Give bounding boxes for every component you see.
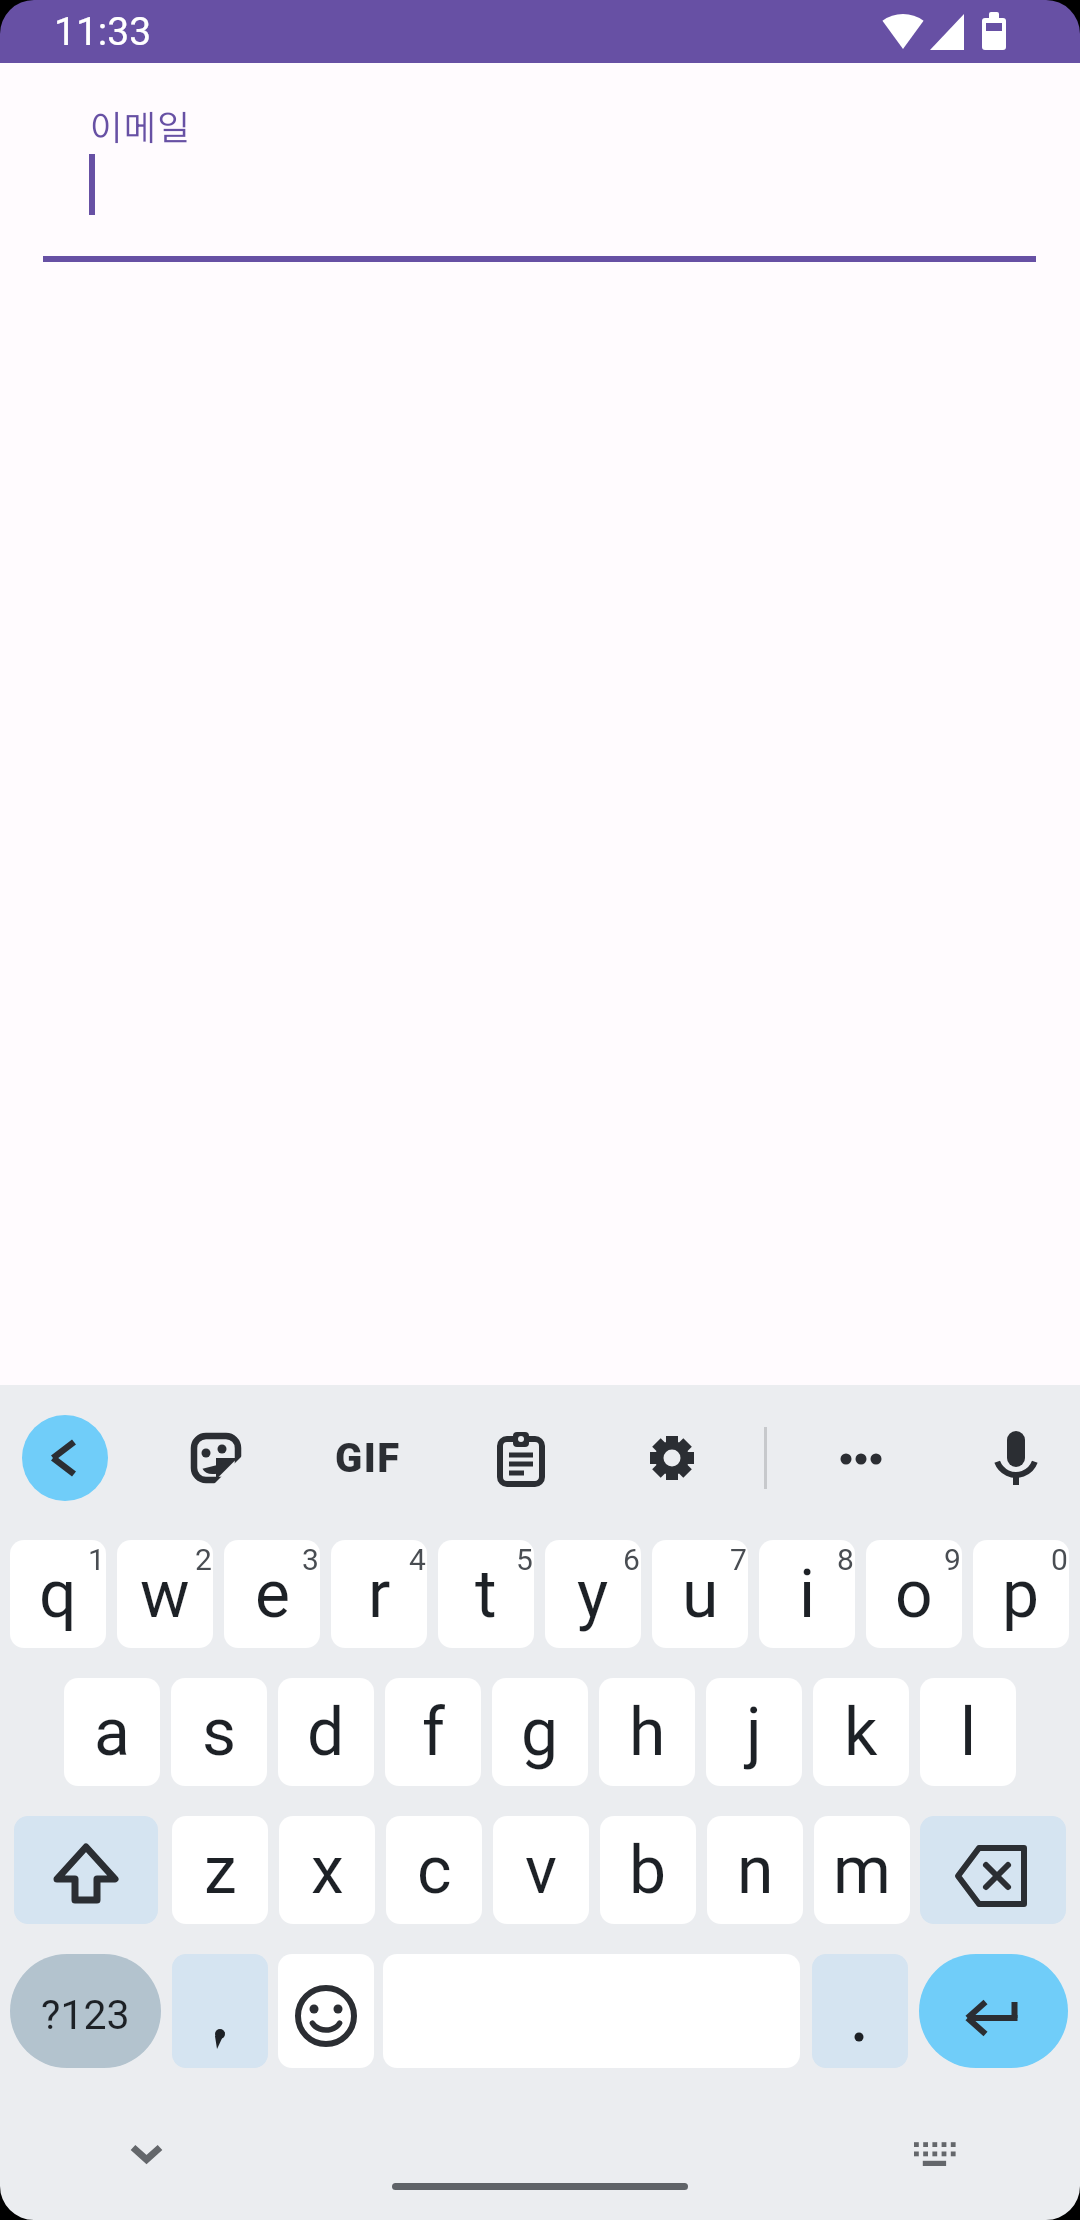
staticText: a: [94, 1694, 130, 1771]
staticText: c: [417, 1832, 452, 1909]
button[interactable]: [920, 1816, 1066, 1924]
button[interactable]: l: [920, 1678, 1016, 1786]
button[interactable]: h: [599, 1678, 695, 1786]
button[interactable]: c: [386, 1816, 482, 1924]
button[interactable]: e: [224, 1540, 320, 1648]
button[interactable]: w: [117, 1540, 213, 1648]
staticText: i: [799, 1556, 816, 1633]
staticText: x: [311, 1832, 344, 1909]
staticText: m: [833, 1832, 891, 1909]
staticText: GIF: [335, 1435, 401, 1482]
staticText: z: [204, 1832, 237, 1909]
staticText: f: [422, 1694, 445, 1771]
button[interactable]: k: [813, 1678, 909, 1786]
staticText: 5: [516, 1542, 533, 1577]
staticText: l: [960, 1694, 977, 1771]
staticText: j: [746, 1694, 762, 1771]
button[interactable]: [392, 2183, 688, 2190]
button[interactable]: p: [973, 1540, 1069, 1648]
staticText: e: [255, 1556, 290, 1633]
button[interactable]: GIF: [330, 1430, 406, 1486]
staticText: 0: [1051, 1542, 1068, 1577]
button[interactable]: s: [171, 1678, 267, 1786]
button[interactable]: [14, 1816, 158, 1924]
button[interactable]: x: [279, 1816, 375, 1924]
staticText: 6: [623, 1542, 640, 1577]
staticText: 11:33: [54, 9, 152, 55]
button[interactable]: [278, 1954, 374, 2068]
button[interactable]: [22, 1415, 108, 1501]
button[interactable]: [646, 1432, 698, 1484]
button[interactable]: [172, 1954, 268, 2068]
button[interactable]: f: [385, 1678, 481, 1786]
staticText: d: [307, 1694, 345, 1771]
button[interactable]: [190, 1432, 242, 1484]
staticText: k: [844, 1694, 878, 1771]
button[interactable]: r: [331, 1540, 427, 1648]
button[interactable]: [992, 1429, 1040, 1487]
button[interactable]: o: [866, 1540, 962, 1648]
button[interactable]: [812, 1954, 908, 2068]
staticText: u: [682, 1556, 719, 1633]
button[interactable]: a: [64, 1678, 160, 1786]
staticText: 2: [195, 1542, 212, 1577]
button[interactable]: b: [600, 1816, 696, 1924]
button[interactable]: ?123: [10, 1954, 161, 2068]
staticText: y: [577, 1556, 609, 1633]
button[interactable]: u: [652, 1540, 748, 1648]
button[interactable]: g: [492, 1678, 588, 1786]
staticText: 8: [837, 1542, 854, 1577]
button[interactable]: d: [278, 1678, 374, 1786]
staticText: 3: [302, 1542, 319, 1577]
staticText: ?123: [41, 1991, 130, 2039]
staticText: t: [475, 1556, 497, 1633]
button[interactable]: m: [814, 1816, 910, 1924]
button[interactable]: [919, 1954, 1068, 2068]
button[interactable]: i: [759, 1540, 855, 1648]
staticText: 이메일: [89, 112, 190, 147]
staticText: s: [202, 1694, 237, 1771]
button[interactable]: t: [438, 1540, 534, 1648]
staticText: 1: [88, 1542, 105, 1577]
button[interactable]: v: [493, 1816, 589, 1924]
staticText: 9: [944, 1542, 961, 1577]
staticText: b: [629, 1832, 667, 1909]
button[interactable]: y: [545, 1540, 641, 1648]
staticText: w: [140, 1556, 190, 1633]
button[interactable]: j: [706, 1678, 802, 1786]
button[interactable]: [496, 1430, 546, 1486]
staticText: q: [39, 1556, 77, 1633]
staticText: v: [525, 1832, 557, 1909]
button[interactable]: n: [707, 1816, 803, 1924]
button[interactable]: [834, 1432, 888, 1484]
staticText: r: [368, 1556, 391, 1633]
button[interactable]: q: [10, 1540, 106, 1648]
button[interactable]: z: [172, 1816, 268, 1924]
button[interactable]: [908, 2136, 960, 2170]
staticText: 4: [409, 1542, 426, 1577]
button[interactable]: [116, 2128, 176, 2178]
staticText: 7: [730, 1542, 747, 1577]
staticText: g: [521, 1694, 559, 1771]
staticText: o: [895, 1556, 933, 1633]
staticText: n: [737, 1832, 774, 1909]
staticText: h: [629, 1694, 666, 1771]
staticText: p: [1002, 1556, 1040, 1633]
